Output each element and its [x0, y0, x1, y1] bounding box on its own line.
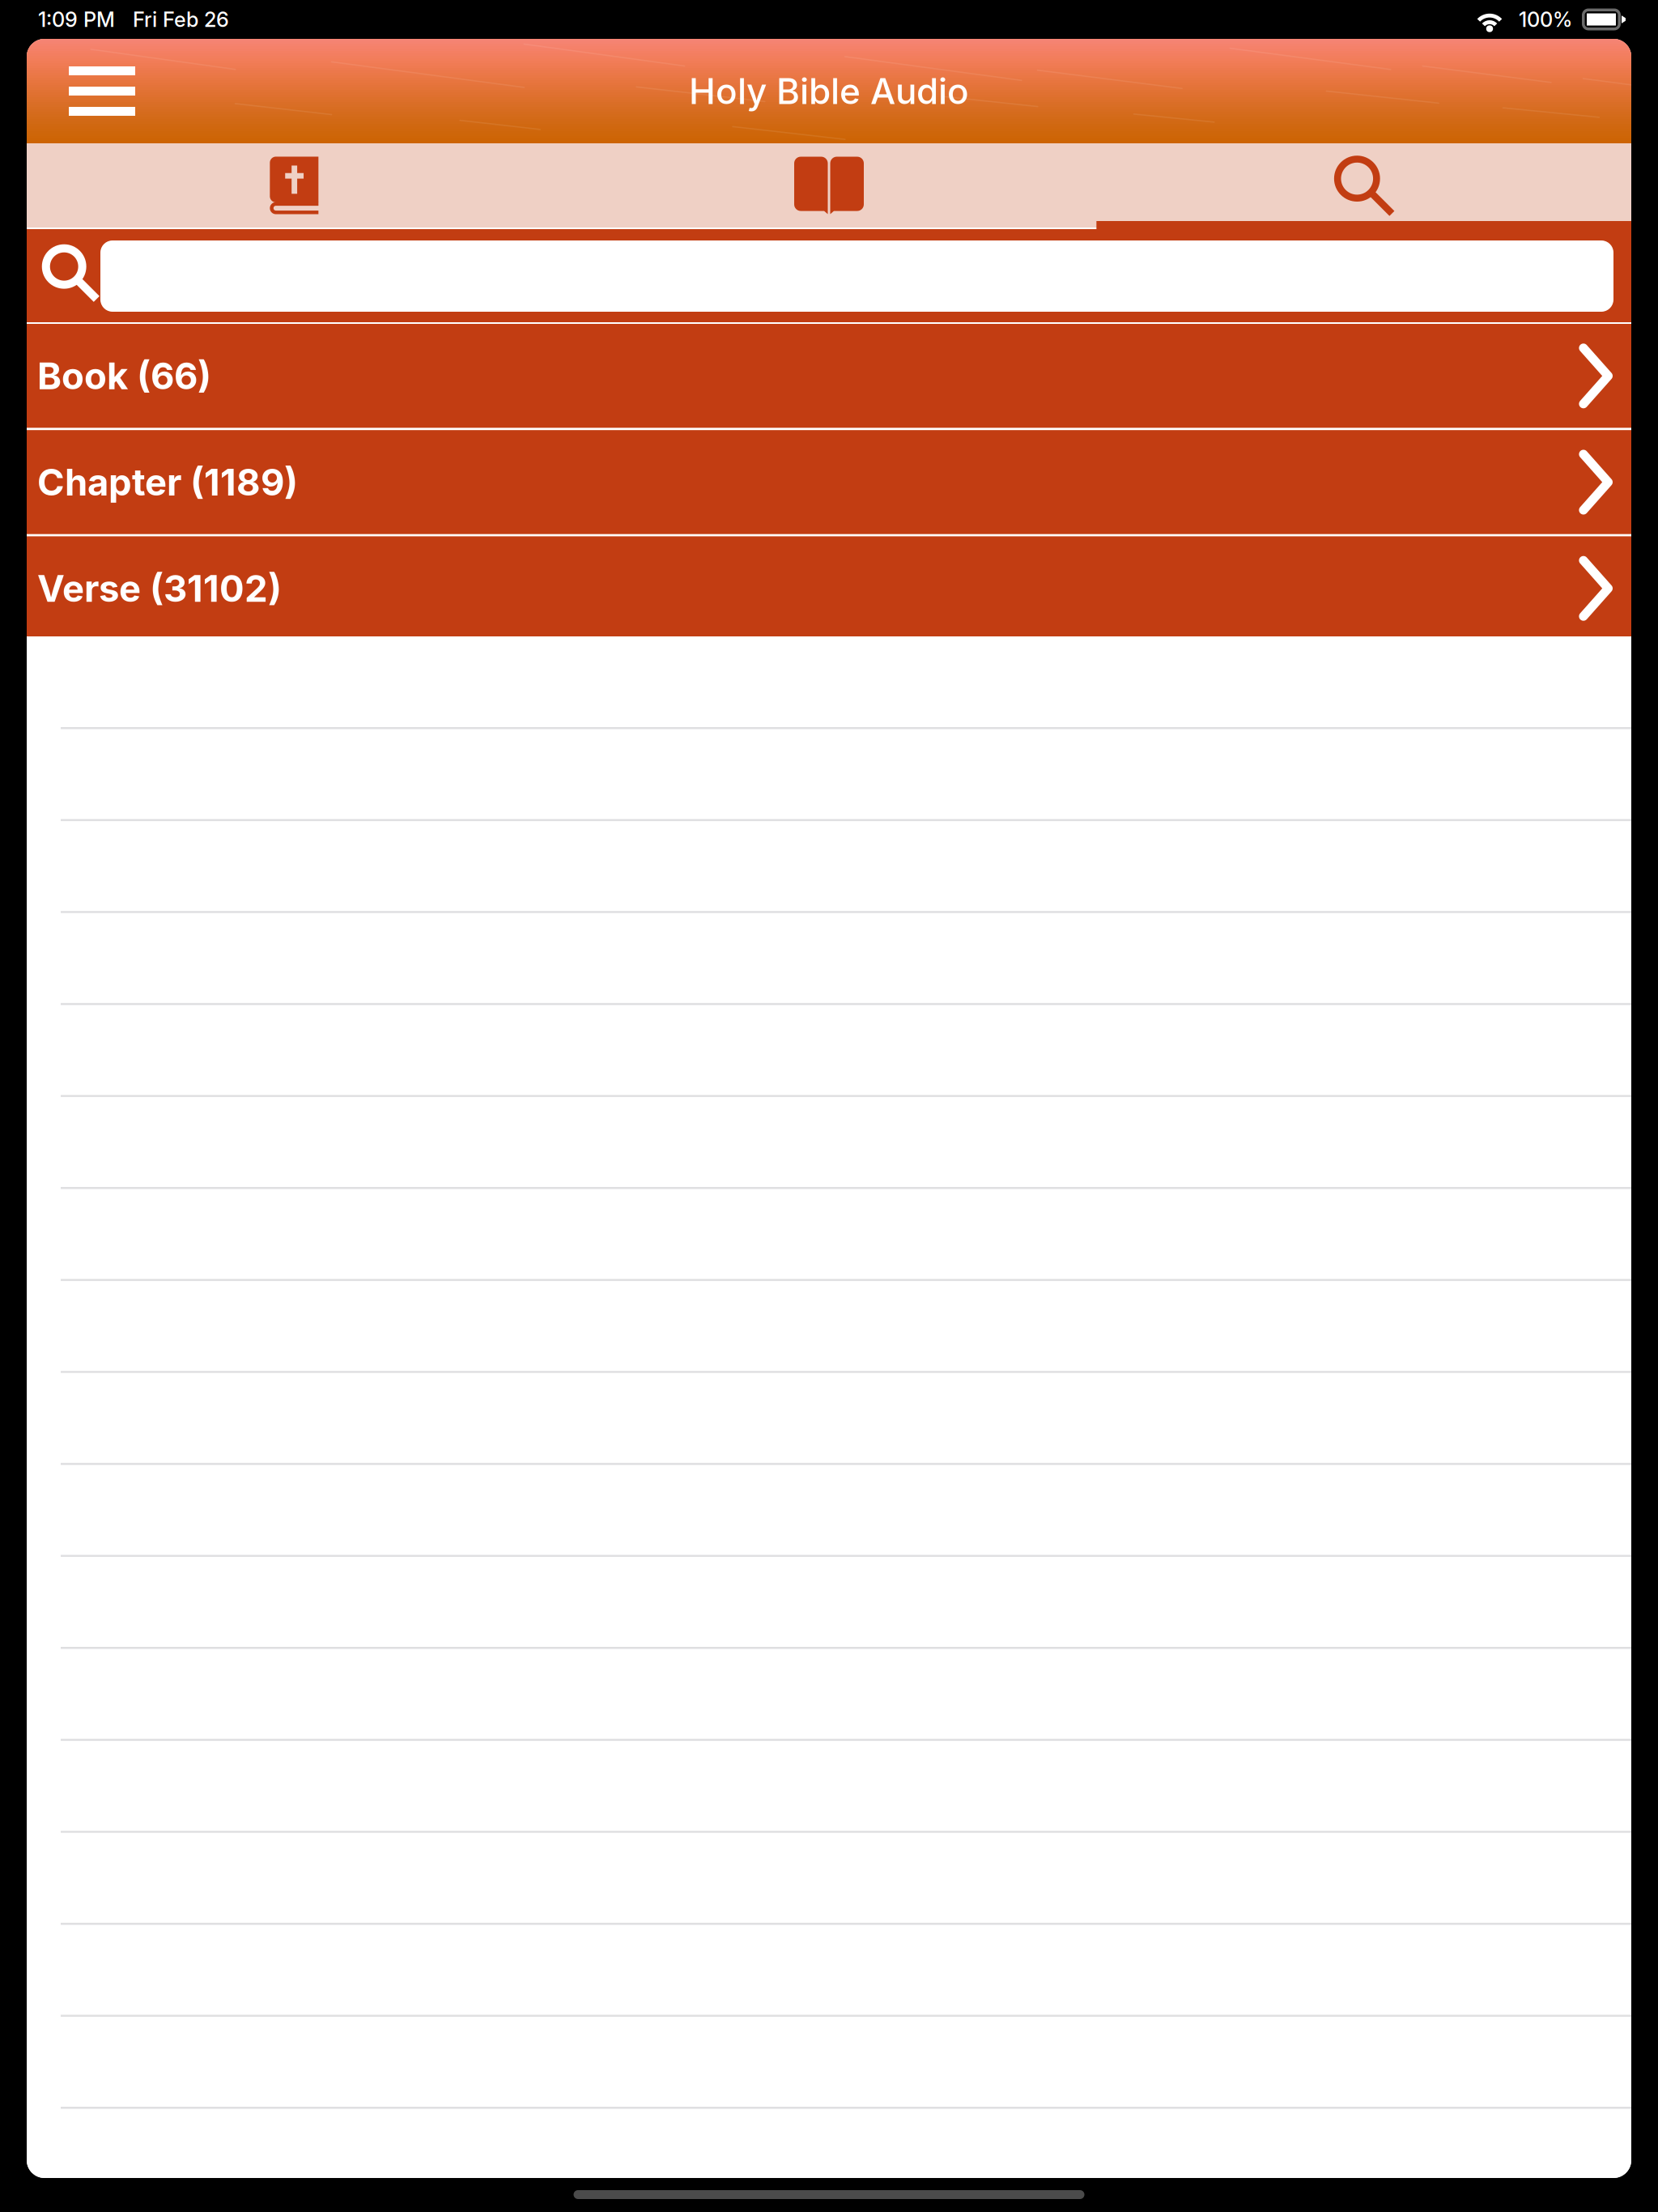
button[interactable]: Chapter (1189) — [27, 430, 1631, 534]
staticText: Book (66) — [37, 354, 211, 398]
button[interactable]: Verse (31102) — [27, 536, 1631, 640]
button[interactable]: Read — [562, 143, 1096, 228]
button[interactable]: Book (66) — [27, 324, 1631, 428]
staticText: Chapter (1189) — [37, 460, 298, 504]
staticText: 1:09 PM — [38, 7, 115, 32]
button[interactable]: Search — [1096, 143, 1631, 228]
button[interactable]: Search field — [100, 240, 1613, 312]
button[interactable]: Menu — [49, 39, 155, 143]
button[interactable]: Bible — [27, 143, 562, 228]
staticText: Verse (31102) — [37, 566, 282, 611]
staticText: 100% — [1519, 7, 1572, 32]
staticText: Holy Bible Audio — [689, 70, 969, 113]
staticText: Fri Feb 26 — [133, 7, 229, 32]
